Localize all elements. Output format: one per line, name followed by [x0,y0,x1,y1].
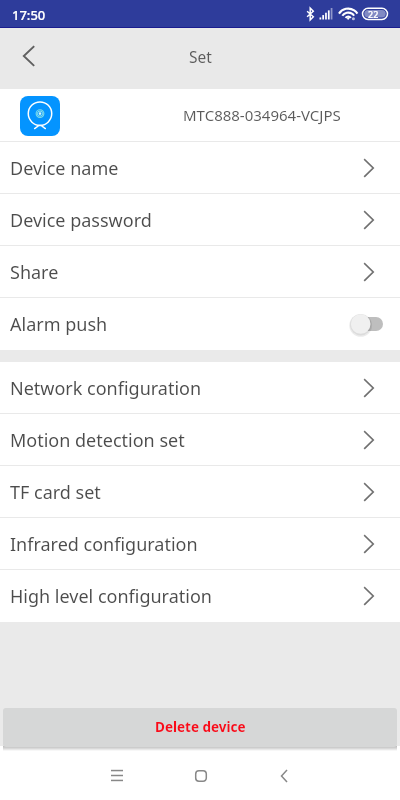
button[interactable]: Network configuration [0,362,400,414]
button[interactable]: Alarm push [0,298,400,350]
button[interactable]: Motion detection set [0,414,400,466]
staticText: Alarm push [10,312,108,337]
button[interactable]: High level configuration [0,570,400,622]
button[interactable]: Back [0,32,57,80]
staticText: Device name [10,156,119,181]
button[interactable]: Infrared configuration [0,518,400,570]
button[interactable]: Alarm push toggle [350,309,388,339]
staticText: Network configuration [10,376,202,401]
staticText: 17:50 [12,6,46,24]
button[interactable]: MTC888-034964-VCJPS [0,89,400,142]
button[interactable]: TF card set [0,466,400,518]
staticText: TF card set [10,480,101,505]
staticText: Motion detection set [10,428,185,453]
staticText: Delete device [155,718,246,736]
button[interactable]: Recents [91,751,143,800]
button[interactable]: Device password [0,194,400,246]
button[interactable]: Device name [0,142,400,194]
staticText: 22 [368,8,379,20]
button[interactable]: Share [0,246,400,298]
button[interactable]: Home [175,751,227,800]
staticText: Infrared configuration [10,532,198,557]
staticText: Device password [10,208,152,233]
staticText: Set [189,46,212,67]
staticText: Share [10,260,59,285]
button[interactable]: Delete device [3,708,397,747]
button[interactable]: Back [258,751,310,800]
staticText: MTC888-034964-VCJPS [183,105,341,125]
staticText: High level configuration [10,584,212,609]
